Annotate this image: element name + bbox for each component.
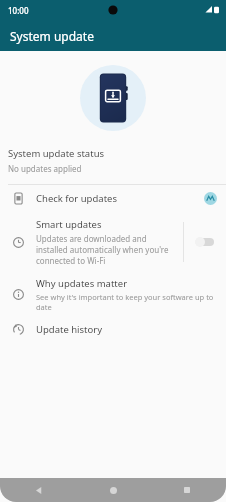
staticText: System update status	[8, 147, 105, 160]
staticText: Smart updates	[36, 218, 102, 231]
button[interactable]: Smart updates toggle	[184, 237, 226, 247]
staticText: Update history	[36, 323, 103, 336]
other: Motorola	[204, 192, 217, 205]
staticText: Why updates matter	[36, 277, 128, 290]
button[interactable]: Update history	[0, 317, 226, 341]
button[interactable]: Home	[104, 481, 122, 499]
button[interactable]: Smart updates	[0, 212, 226, 272]
staticText: Updates are downloaded and installed aut…	[36, 233, 173, 266]
button[interactable]: Back	[30, 481, 48, 499]
button[interactable]: Recents	[178, 481, 196, 499]
staticText: See why it's important to keep your soft…	[36, 292, 222, 312]
button[interactable]: Check for updates	[0, 185, 226, 212]
staticText: 10:00	[8, 5, 29, 16]
staticText: Check for updates	[36, 192, 117, 205]
staticText: System update	[10, 28, 94, 44]
staticText: No updates applied	[8, 163, 82, 174]
button[interactable]: Why updates matter	[0, 272, 226, 317]
